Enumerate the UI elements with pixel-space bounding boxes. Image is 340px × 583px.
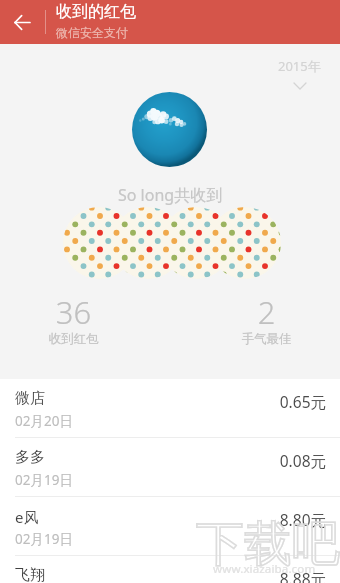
staticText: 02月20日: [15, 412, 73, 430]
button[interactable]: 2015年: [276, 57, 323, 89]
button[interactable]: Back: [0, 0, 44, 44]
button[interactable]: 36: [33, 291, 114, 343]
staticText: 微店: [15, 389, 45, 408]
staticText: 微信安全支付: [56, 25, 128, 40]
staticText: 0.08元: [0, 450, 326, 471]
staticText: e风: [15, 507, 39, 527]
staticText: 飞翔: [15, 566, 45, 583]
staticText: 36: [33, 291, 114, 333]
staticText: 下载吧: [196, 514, 340, 574]
staticText: 多多: [15, 448, 45, 467]
staticText: www.xiazaiba.com: [213, 561, 316, 577]
staticText: 02月19日: [15, 471, 73, 489]
button[interactable]: e风: [0, 497, 340, 556]
staticText: 0.65元: [0, 391, 326, 412]
staticText: 手气最佳: [226, 331, 307, 347]
staticText: 2015年: [278, 57, 321, 75]
button[interactable]: 多多: [0, 438, 340, 497]
staticText: 2: [226, 291, 307, 333]
staticText: 8.88元: [0, 568, 326, 583]
staticText: 02月19日: [15, 530, 73, 548]
button[interactable]: 微店: [0, 379, 340, 438]
staticText: 收到的红包: [56, 2, 136, 22]
button[interactable]: 飞翔: [0, 556, 340, 583]
staticText: 收到红包: [33, 331, 114, 347]
staticText: 8.80元: [0, 509, 326, 530]
button[interactable]: 2: [226, 291, 307, 343]
staticText: So long共收到: [118, 184, 223, 206]
